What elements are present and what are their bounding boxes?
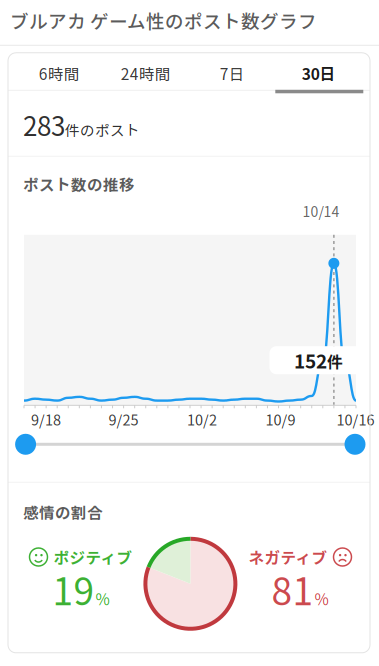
button[interactable]: 7日 [189, 55, 275, 92]
staticText: ブルアカ ゲーム性のポスト数グラフ [10, 7, 317, 34]
staticText: 10/2 [187, 409, 217, 430]
staticText: 10/14 [302, 201, 339, 221]
staticText: 283 [23, 106, 65, 143]
button[interactable]: 30日 [275, 55, 362, 92]
staticText: 81 [271, 562, 313, 616]
staticText: 6時間 [39, 62, 80, 84]
staticText: % [95, 587, 109, 610]
staticText: 19 [52, 562, 94, 616]
staticText: 30日 [302, 62, 336, 84]
staticText: 10/16 [336, 409, 374, 430]
staticText: ネガティブ [248, 546, 327, 568]
staticText: 9/25 [108, 409, 138, 430]
button[interactable]: 24時間 [102, 55, 189, 92]
staticText: 24時間 [121, 62, 171, 84]
staticText: 感情の割合 [23, 501, 103, 523]
staticText: 件のポスト [65, 119, 140, 140]
staticText: ポスト数の推移 [23, 173, 135, 195]
staticText: ポジティブ [53, 546, 132, 568]
staticText: 9/18 [31, 409, 61, 430]
staticText: 10/9 [265, 409, 295, 430]
staticText: 7日 [220, 62, 245, 84]
staticText: % [314, 587, 328, 610]
staticText: 件 [327, 350, 343, 373]
staticText: 152 [294, 346, 327, 374]
button[interactable]: 6時間 [16, 55, 102, 92]
